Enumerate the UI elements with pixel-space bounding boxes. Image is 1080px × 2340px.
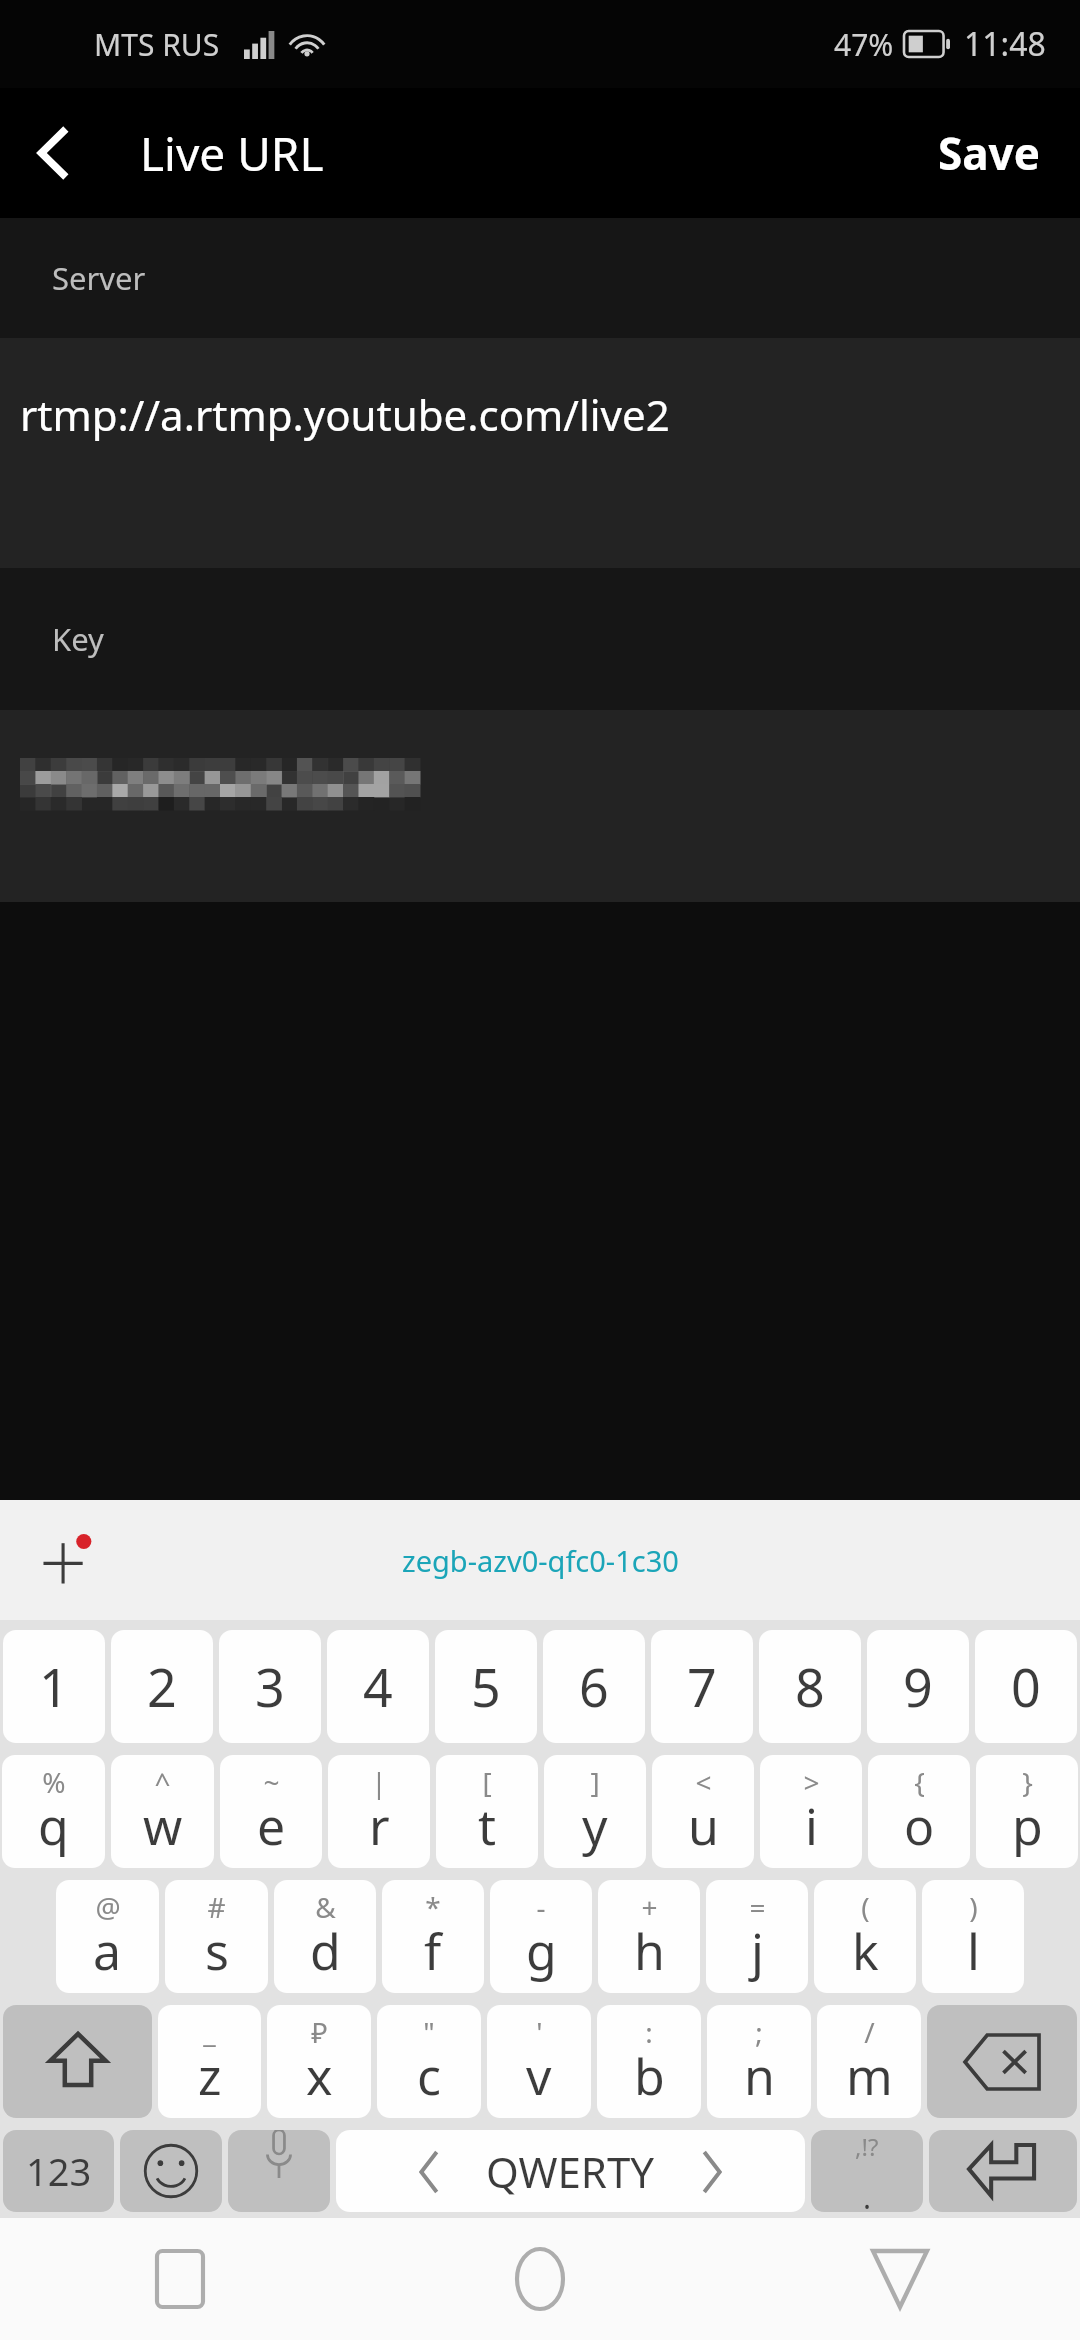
staticText: ~ [263,1763,280,1801]
button[interactable]: 4 [327,1630,429,1743]
button[interactable]: ' [487,2005,591,2118]
staticText: 47% [834,24,894,65]
staticText: / [864,2013,875,2051]
button[interactable] [0,710,1080,902]
staticText: v [526,2042,552,2110]
button[interactable]: Enter [929,2130,1077,2212]
button[interactable]: { [868,1755,970,1868]
staticText: ,!? [855,2130,879,2163]
button[interactable]: Recents [0,2218,360,2340]
staticText: t [478,1792,497,1860]
staticText: [ [482,1763,492,1801]
button[interactable]: 0 [975,1630,1077,1743]
button[interactable]: Back [720,2218,1080,2340]
button[interactable]: 2 [111,1630,213,1743]
staticText: o [904,1792,935,1860]
staticText: q [38,1792,69,1860]
button[interactable]: zegb-azv0-qfc0-1c30 [372,1525,709,1596]
staticText: ] [590,1763,600,1801]
button[interactable]: Add [22,1515,112,1605]
button[interactable]: ) [922,1880,1024,1993]
button[interactable]: 8 [759,1630,861,1743]
staticText: Server [52,257,146,299]
staticText: 2 [147,1651,177,1722]
button[interactable]: ] [544,1755,646,1868]
staticText: c [417,2042,441,2110]
staticText: 6 [579,1651,609,1722]
button[interactable]: Back [0,88,110,218]
button[interactable]: 1 [3,1630,105,1743]
staticText: u [688,1792,719,1860]
button[interactable]: 5 [435,1630,537,1743]
button[interactable]: # [165,1880,268,1993]
staticText: 4 [363,1651,393,1722]
button[interactable]: < [652,1755,754,1868]
staticText: Live URL [140,122,324,185]
staticText: & [315,1888,336,1926]
button[interactable]: + [598,1880,700,1993]
button[interactable]: Emoji [120,2130,222,2212]
staticText: h [634,1917,665,1985]
staticText: x [306,2042,333,2110]
button[interactable]: Shift [3,2005,152,2118]
staticText: 3 [255,1651,285,1722]
staticText: = [749,1888,766,1926]
button[interactable]: ( [814,1880,916,1993]
staticText: ; [755,2013,763,2051]
button[interactable]: - [490,1880,592,1993]
staticText: j [751,1917,764,1985]
button[interactable]: Backspace [927,2005,1077,2118]
button[interactable]: | [328,1755,430,1868]
button[interactable]: _ [158,2005,261,2118]
button[interactable]: ~ [220,1755,322,1868]
button[interactable]: 3 [219,1630,321,1743]
staticText: ^ [154,1763,171,1801]
button[interactable]: ₽ [267,2005,371,2118]
button[interactable]: 7 [651,1630,753,1743]
button[interactable]: Numbers [3,2130,114,2212]
button[interactable]: * [382,1880,484,1993]
staticText: 7 [687,1651,717,1722]
staticText: Save [938,123,1040,183]
button[interactable]: ; [707,2005,811,2118]
staticText: m [846,2042,893,2110]
button[interactable]: Home [360,2218,720,2340]
button[interactable]: rtmp://a.rtmp.youtube.com/live2 [0,338,1080,568]
button[interactable]: " [377,2005,481,2118]
staticText: : [645,2013,653,2051]
button[interactable]: Voice input [228,2130,330,2212]
button[interactable]: 9 [867,1630,969,1743]
button[interactable]: Save [898,88,1080,218]
button[interactable]: [ [436,1755,538,1868]
button[interactable]: ^ [111,1755,214,1868]
staticText: d [310,1917,341,1985]
staticText: s [205,1917,229,1985]
button[interactable]: @ [56,1880,159,1993]
staticText: e [257,1792,286,1860]
button[interactable]: } [976,1755,1078,1868]
staticText: 8 [795,1651,825,1722]
button[interactable]: = [706,1880,808,1993]
button[interactable]: & [274,1880,376,1993]
staticText: rtmp://a.rtmp.youtube.com/live2 [20,386,670,443]
button[interactable]: : [597,2005,701,2118]
button[interactable]: > [760,1755,862,1868]
staticText: ( [861,1888,870,1926]
button[interactable]: Punctuation [811,2130,923,2212]
staticText: | [371,1763,387,1801]
button[interactable]: % [2,1755,105,1868]
staticText: p [1012,1792,1043,1860]
staticText: . [863,2177,872,2212]
button[interactable]: / [817,2005,921,2118]
staticText: i [805,1792,818,1860]
button[interactable]: 6 [543,1630,645,1743]
staticText: + [641,1888,658,1926]
staticText: Key [52,618,104,660]
staticText: n [744,2042,775,2110]
staticText: * [425,1888,441,1926]
button[interactable]: QWERTY [336,2130,805,2212]
staticText: } [1022,1763,1033,1801]
staticText: zegb-azv0-qfc0-1c30 [402,1541,679,1580]
staticText: 0 [1011,1651,1041,1722]
staticText: ₽ [311,2013,328,2051]
